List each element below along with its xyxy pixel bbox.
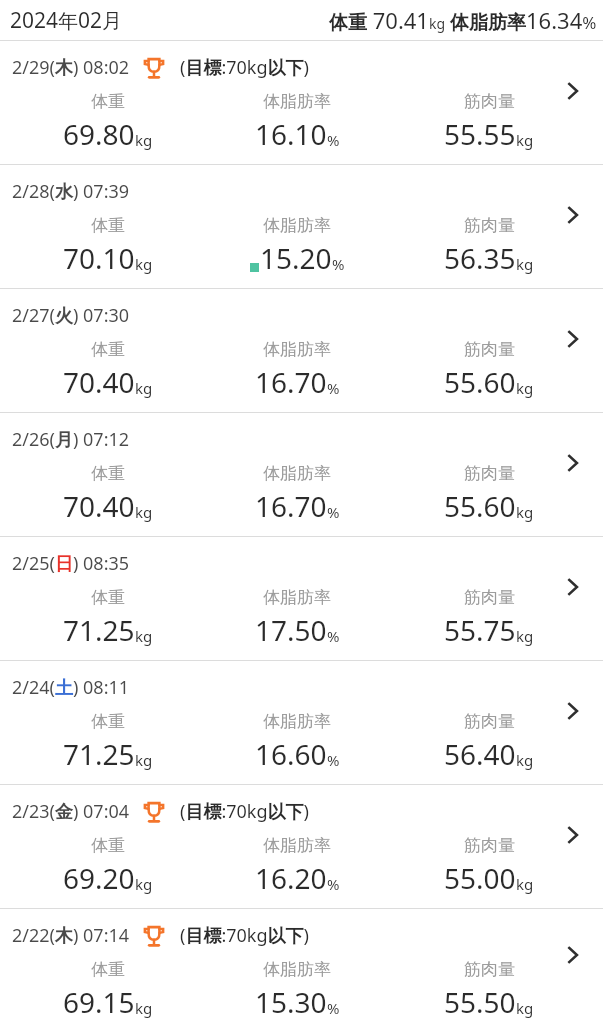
- staticText: 55.00: [444, 859, 516, 897]
- staticText: 体重: [91, 959, 125, 980]
- staticText: 体脂肪率: [263, 215, 331, 236]
- button[interactable]: 2/27(火) 07:30: [0, 289, 603, 412]
- staticText: %: [327, 998, 340, 1018]
- staticText: %: [327, 626, 340, 646]
- staticText: 2/27(火) 07:30: [12, 303, 130, 328]
- staticText: kg: [516, 378, 534, 398]
- button[interactable]: 2/22(木) 07:14: [0, 909, 603, 1024]
- staticText: 筋肉量: [464, 959, 515, 980]
- staticText: 2/25(日) 08:35: [12, 551, 130, 576]
- staticText: 体重: [91, 215, 125, 236]
- staticText: 70.40: [63, 363, 135, 401]
- staticText: 筋肉量: [464, 339, 515, 360]
- staticText: 70.10: [63, 239, 135, 277]
- staticText: 体重: [91, 463, 125, 484]
- staticText: kg: [516, 254, 534, 274]
- staticText: kg: [135, 750, 153, 770]
- staticText: 55.60: [444, 363, 516, 401]
- staticText: 56.40: [444, 735, 516, 773]
- staticText: 15.30: [255, 983, 327, 1021]
- staticText: 体重: [91, 835, 125, 856]
- other: 詳細を見る: [559, 449, 587, 477]
- staticText: %: [332, 254, 345, 274]
- staticText: kg: [516, 626, 534, 646]
- other: 詳細を見る: [559, 325, 587, 353]
- staticText: 体脂肪率: [263, 91, 331, 112]
- staticText: kg: [135, 502, 153, 522]
- staticText: 16.70: [255, 487, 327, 525]
- staticText: (目標:70kg以下): [180, 923, 309, 948]
- staticText: 69.15: [63, 983, 135, 1021]
- staticText: 69.20: [63, 859, 135, 897]
- other: 詳細を見る: [559, 77, 587, 105]
- staticText: 2/24(土) 08:11: [12, 675, 130, 700]
- staticText: kg: [516, 502, 534, 522]
- staticText: kg: [516, 874, 534, 894]
- staticText: %: [327, 130, 340, 150]
- button[interactable]: 2/28(水) 07:39: [0, 165, 603, 288]
- staticText: kg: [135, 626, 153, 646]
- staticText: 体脂肪率: [263, 959, 331, 980]
- staticText: 筋肉量: [464, 711, 515, 732]
- staticText: 筋肉量: [464, 835, 515, 856]
- staticText: 16.70: [255, 363, 327, 401]
- staticText: 筋肉量: [464, 463, 515, 484]
- staticText: 56.35: [444, 239, 516, 277]
- staticText: kg: [516, 750, 534, 770]
- staticText: kg: [135, 130, 153, 150]
- staticText: 16.20: [255, 859, 327, 897]
- button[interactable]: 2/26(月) 07:12: [0, 413, 603, 536]
- staticText: 体脂肪率: [263, 835, 331, 856]
- staticText: 17.50: [255, 611, 327, 649]
- staticText: 71.25: [63, 611, 135, 649]
- staticText: 55.55: [444, 115, 516, 153]
- staticText: 15.20: [260, 239, 332, 277]
- staticText: 体脂肪率: [263, 587, 331, 608]
- staticText: %: [327, 378, 340, 398]
- staticText: 体重 70.41kg 体脂肪率16.34%: [329, 5, 597, 35]
- staticText: 2/22(木) 07:14: [12, 923, 130, 948]
- other: 詳細を見る: [559, 573, 587, 601]
- staticText: 2/29(木) 08:02: [12, 55, 130, 80]
- staticText: (目標:70kg以下): [180, 55, 309, 80]
- staticText: 筋肉量: [464, 587, 515, 608]
- staticText: kg: [135, 254, 153, 274]
- staticText: 16.10: [255, 115, 327, 153]
- staticText: %: [327, 750, 340, 770]
- button[interactable]: 2/23(金) 07:04: [0, 785, 603, 908]
- staticText: %: [327, 502, 340, 522]
- staticText: 2024年02月: [10, 6, 123, 35]
- staticText: 体脂肪率: [263, 339, 331, 360]
- staticText: kg: [516, 130, 534, 150]
- other: 詳細を見る: [559, 941, 587, 969]
- staticText: 体重: [91, 339, 125, 360]
- staticText: 69.80: [63, 115, 135, 153]
- staticText: 16.60: [255, 735, 327, 773]
- staticText: 71.25: [63, 735, 135, 773]
- staticText: 2/28(水) 07:39: [12, 179, 130, 204]
- other: 詳細を見る: [559, 697, 587, 725]
- staticText: 筋肉量: [464, 215, 515, 236]
- staticText: 55.50: [444, 983, 516, 1021]
- staticText: 筋肉量: [464, 91, 515, 112]
- staticText: 55.60: [444, 487, 516, 525]
- staticText: 55.75: [444, 611, 516, 649]
- staticText: kg: [135, 874, 153, 894]
- staticText: (目標:70kg以下): [180, 799, 309, 824]
- staticText: kg: [135, 998, 153, 1018]
- staticText: kg: [516, 998, 534, 1018]
- staticText: 体重: [91, 711, 125, 732]
- other: 詳細を見る: [559, 821, 587, 849]
- staticText: 体脂肪率: [263, 463, 331, 484]
- staticText: 2/23(金) 07:04: [12, 799, 130, 824]
- other: 詳細を見る: [559, 201, 587, 229]
- staticText: 体重: [91, 587, 125, 608]
- staticText: 体脂肪率: [263, 711, 331, 732]
- staticText: 体重: [91, 91, 125, 112]
- button[interactable]: 2/29(木) 08:02: [0, 41, 603, 164]
- button[interactable]: 2/25(日) 08:35: [0, 537, 603, 660]
- staticText: %: [327, 874, 340, 894]
- button[interactable]: 2/24(土) 08:11: [0, 661, 603, 784]
- staticText: 2/26(月) 07:12: [12, 427, 130, 452]
- staticText: 70.40: [63, 487, 135, 525]
